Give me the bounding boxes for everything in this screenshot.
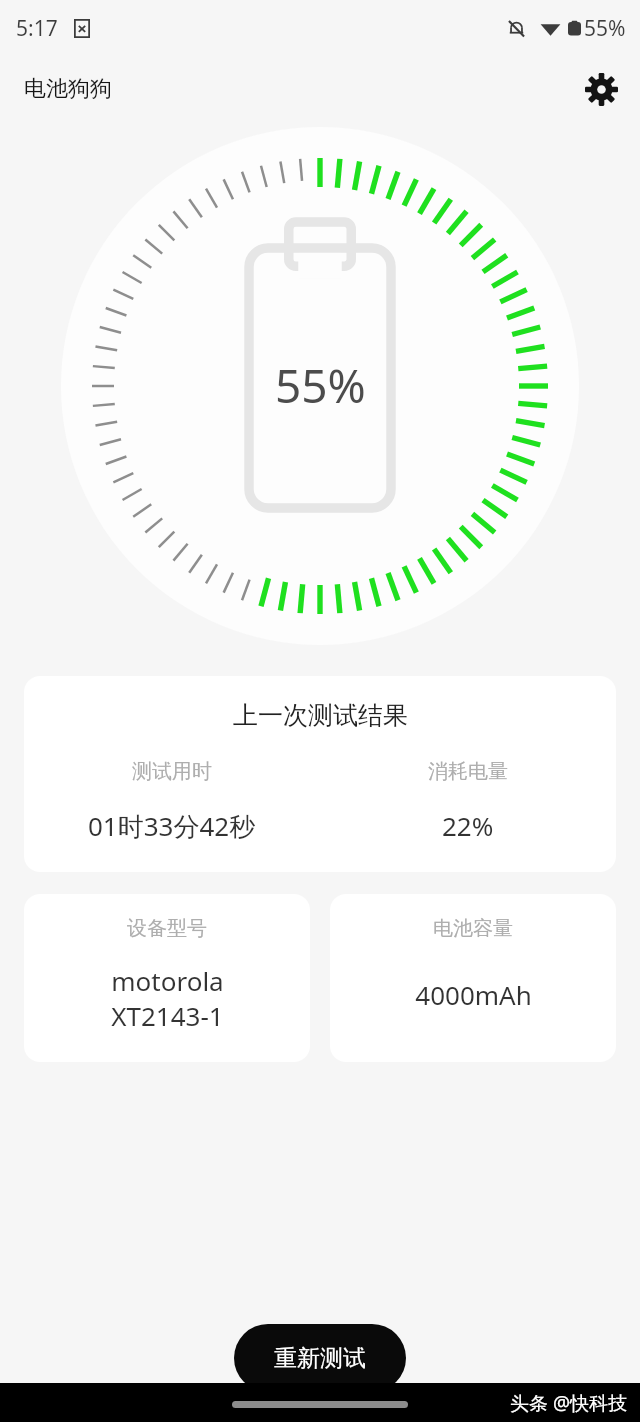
button[interactable]: 电池狗狗 [24, 75, 112, 103]
staticText: 上一次测试结果 [233, 700, 408, 731]
staticText: 22% [442, 808, 494, 843]
staticText: 4000mAh [415, 977, 532, 1012]
staticText: 电池容量 [433, 916, 513, 941]
button[interactable]: 电池容量 [330, 894, 616, 1062]
button[interactable]: 上一次测试结果 [24, 676, 616, 872]
staticText: XT2143-1 [111, 998, 224, 1033]
button[interactable]: 设备型号 [24, 894, 310, 1062]
staticText: motorola [111, 963, 224, 998]
staticText: 头条 @快科技 [510, 1390, 628, 1416]
staticText: 5:17 [16, 14, 58, 43]
staticText: 电池狗狗 [24, 75, 112, 103]
staticText: 55% [584, 14, 626, 43]
staticText: 重新测试 [274, 1344, 366, 1373]
staticText: 消耗电量 [428, 759, 508, 784]
button[interactable]: Settings [578, 66, 624, 112]
staticText: 测试用时 [132, 759, 212, 784]
staticText: 设备型号 [127, 916, 207, 941]
staticText: 01时33分42秒 [88, 808, 256, 844]
staticText: 55% [275, 354, 366, 417]
button[interactable]: 重新测试 [234, 1324, 406, 1392]
